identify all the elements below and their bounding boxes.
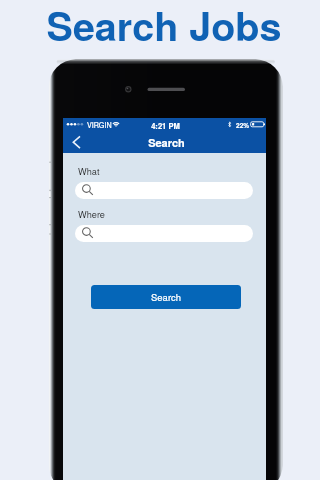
staticText: 4:21 PM (64, 120, 267, 131)
staticText: VIRGIN (87, 120, 112, 130)
button[interactable]: What (75, 182, 253, 199)
button[interactable]: Back (65, 133, 87, 153)
staticText: Search Jobs (4, 0, 320, 54)
staticText: Search (65, 135, 268, 151)
staticText: Search (151, 290, 182, 304)
button[interactable]: Search (91, 285, 241, 309)
staticText: 22% (236, 121, 250, 130)
staticText: Where (78, 207, 105, 220)
button[interactable]: Where (75, 225, 253, 242)
staticText: What (78, 164, 100, 177)
